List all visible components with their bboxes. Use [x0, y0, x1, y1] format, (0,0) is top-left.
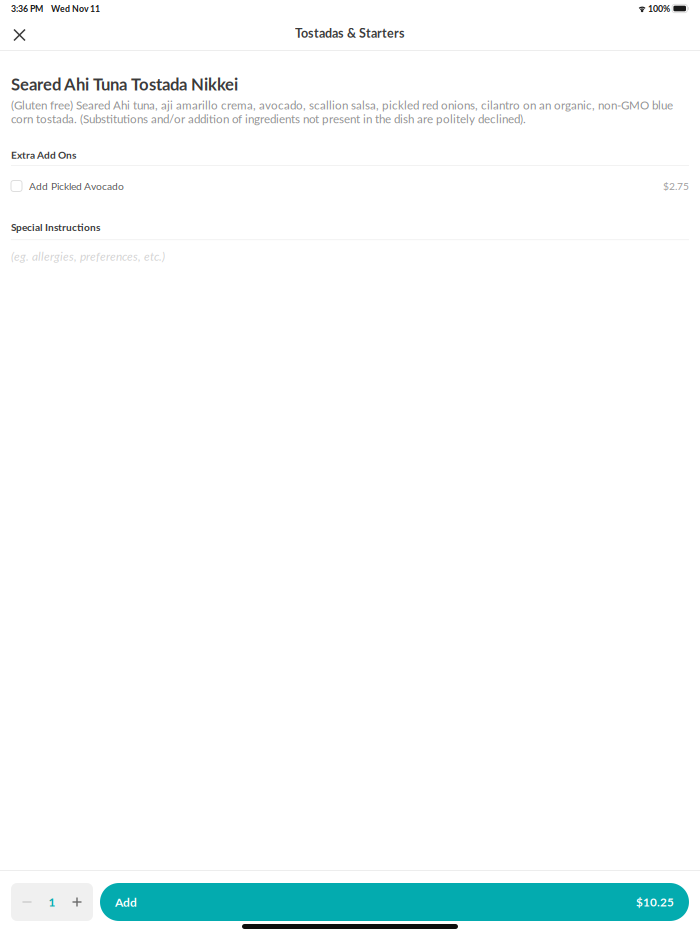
staticText: Wed Nov 11 — [51, 3, 100, 14]
staticText — [43, 3, 51, 14]
button[interactable]: Add Pickled Avocado — [11, 166, 689, 200]
staticText: Tostadas & Starters — [295, 25, 405, 40]
staticText: (Gluten free) Seared Ahi tuna, aji amari… — [11, 98, 673, 126]
staticText: 3:36 PM — [11, 3, 43, 14]
button[interactable]: (eg. allergies, preferences, etc.) — [11, 240, 689, 269]
staticText: $2.75 — [663, 180, 689, 192]
button[interactable]: Close — [0, 22, 39, 48]
staticText: Seared Ahi Tuna Tostada Nikkei — [11, 74, 238, 94]
staticText: 100% — [646, 3, 670, 14]
button[interactable]: Increase quantity — [64, 883, 90, 921]
staticText: Add — [115, 895, 137, 909]
button[interactable]: Decrease quantity — [14, 883, 40, 921]
staticText: $10.25 — [636, 895, 674, 909]
staticText: (eg. allergies, preferences, etc.) — [11, 249, 165, 263]
staticText: Extra Add Ons — [11, 149, 76, 161]
staticText: 1 — [48, 895, 55, 909]
staticText — [670, 3, 672, 14]
staticText: Special Instructions — [11, 221, 100, 233]
button[interactable]: Add — [100, 883, 689, 921]
staticText: Add Pickled Avocado — [29, 180, 124, 192]
